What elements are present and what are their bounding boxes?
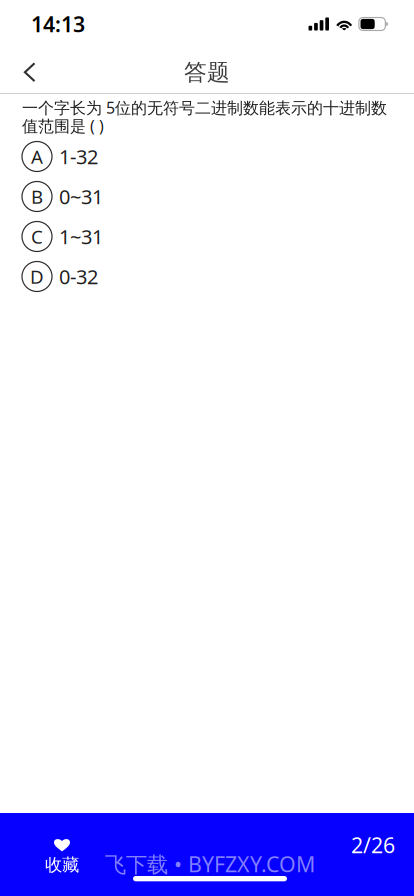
staticText: 值范围是 ( ): [22, 115, 104, 136]
staticText: 14:13: [31, 10, 85, 38]
button[interactable]: C: [0, 216, 414, 256]
staticText: 1-32: [59, 143, 98, 170]
button[interactable]: 2/26: [323, 833, 395, 857]
staticText: A: [31, 144, 43, 169]
button[interactable]: B: [0, 176, 414, 216]
button[interactable]: Back: [7, 48, 53, 93]
staticText: 0-32: [59, 263, 98, 290]
staticText: D: [30, 264, 44, 289]
button[interactable]: A: [0, 136, 414, 176]
button[interactable]: D: [0, 256, 414, 296]
staticText: 收藏: [45, 854, 79, 876]
staticText: 答题: [184, 59, 230, 86]
button[interactable]: 收藏: [18, 838, 106, 884]
staticText: 2/26: [351, 831, 395, 859]
staticText: 0~31: [59, 183, 103, 210]
staticText: 飞下载 • BYFZXY.COM: [105, 850, 315, 878]
staticText: C: [31, 224, 43, 249]
staticText: B: [31, 184, 43, 209]
staticText: 1~31: [59, 223, 103, 250]
staticText: 一个字长为 5位的无符号二进制数能表示的十进制数: [22, 97, 387, 118]
